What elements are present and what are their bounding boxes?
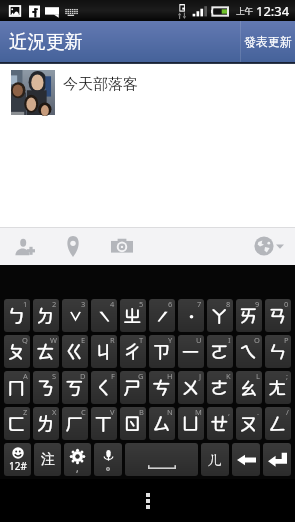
button[interactable]: ㄤ	[265, 371, 291, 404]
button[interactable]: ㄩ	[178, 407, 204, 440]
staticText: ㄧ	[181, 341, 201, 362]
staticText: 2	[52, 299, 57, 309]
staticText: P	[284, 335, 289, 345]
staticText: Y	[168, 335, 173, 345]
staticText: ㄘ	[152, 377, 172, 398]
button[interactable]: ㄚ	[207, 299, 233, 332]
button[interactable]: ㄅ	[4, 299, 30, 332]
button[interactable]: ㄢ	[265, 299, 291, 332]
button[interactable]: Camera	[97, 227, 146, 265]
button[interactable]: ㄏ	[62, 407, 88, 440]
button[interactable]: ㄠ	[236, 371, 262, 404]
staticText: ㄞ	[239, 305, 259, 326]
button[interactable]: ㄓ	[120, 299, 146, 332]
staticText: O	[254, 335, 260, 345]
button[interactable]: ㄥ	[265, 407, 291, 440]
staticText: 4	[110, 299, 115, 309]
button[interactable]: ㄌ	[33, 407, 59, 440]
staticText: Z	[23, 407, 28, 417]
button[interactable]: 發表更新	[241, 21, 295, 62]
staticText: J	[199, 371, 202, 381]
staticText: ㄐ	[94, 341, 114, 362]
button[interactable]: 6	[149, 299, 175, 332]
button[interactable]: ㄟ	[236, 335, 262, 368]
button[interactable]: ㄛ	[207, 335, 233, 368]
button[interactable]: ㄔ	[120, 335, 146, 368]
staticText: ㄈ	[7, 413, 27, 434]
button[interactable]: ㄕ	[120, 371, 146, 404]
staticText: ㄗ	[152, 341, 172, 362]
staticText: ㄎ	[65, 377, 85, 398]
staticText: ㄣ	[268, 341, 288, 362]
button[interactable]: ㄦ	[201, 443, 229, 476]
staticText: S	[52, 371, 57, 381]
staticText: ㄑ	[94, 377, 114, 398]
button[interactable]: ㄖ	[120, 407, 146, 440]
staticText: ㄢ	[268, 305, 288, 326]
button[interactable]: 注	[34, 443, 61, 476]
staticText: 5	[139, 299, 144, 309]
staticText: ㄍ	[65, 341, 85, 362]
button[interactable]: ㄊ	[33, 335, 59, 368]
button[interactable]: ㄗ	[149, 335, 175, 368]
staticText: 7	[197, 299, 202, 309]
staticText: ㄙ	[152, 413, 172, 434]
staticText: ;	[286, 371, 289, 381]
button[interactable]: ㄡ	[236, 407, 262, 440]
staticText: R	[110, 335, 115, 345]
button[interactable]: ㄑ	[91, 371, 117, 404]
button[interactable]: ㄐ	[91, 335, 117, 368]
button[interactable]: ㄉ	[33, 299, 59, 332]
staticText: ㄒ	[94, 413, 114, 434]
button[interactable]: ㄧ	[178, 335, 204, 368]
button[interactable]: Audience selector	[243, 227, 295, 265]
staticText: 0	[284, 299, 289, 309]
staticText: D	[80, 371, 86, 381]
staticText: ㄟ	[239, 341, 259, 362]
staticText: V	[110, 407, 115, 417]
staticText: ,	[76, 461, 79, 475]
staticText: N	[167, 407, 173, 417]
staticText: 6	[168, 299, 173, 309]
button[interactable]: ㄆ	[4, 335, 30, 368]
button[interactable]: ㄇ	[4, 371, 30, 404]
staticText: ㄅ	[7, 305, 27, 326]
staticText: ㄌ	[36, 413, 56, 434]
button[interactable]: Space	[125, 443, 198, 476]
staticText: 1	[23, 299, 28, 309]
staticText: .	[257, 407, 260, 417]
staticText: ㄉ	[36, 305, 56, 326]
button[interactable]: ㄙ	[149, 407, 175, 440]
button[interactable]: ㄘ	[149, 371, 175, 404]
button[interactable]: Backspace	[232, 443, 260, 476]
button[interactable]: ㄒ	[91, 407, 117, 440]
staticText: ㄥ	[268, 413, 288, 434]
button[interactable]: ㄨ	[178, 371, 204, 404]
button[interactable]: ㄋ	[33, 371, 59, 404]
staticText: 3	[81, 299, 86, 309]
staticText: L	[256, 371, 260, 381]
button[interactable]: ㄜ	[207, 371, 233, 404]
button[interactable]: Enter	[263, 443, 291, 476]
staticText: ㄖ	[123, 413, 143, 434]
button[interactable]: ㄈ	[4, 407, 30, 440]
staticText: Q	[22, 335, 28, 345]
button[interactable]: Settings	[64, 443, 91, 476]
button[interactable]: Voice input	[94, 443, 122, 476]
button[interactable]: Tag people	[0, 227, 49, 265]
button[interactable]: ㄝ	[207, 407, 233, 440]
button[interactable]: Check in	[49, 227, 97, 265]
staticText: K	[226, 371, 231, 381]
button[interactable]: ㄞ	[236, 299, 262, 332]
staticText: 今天部落客	[63, 75, 138, 94]
button[interactable]: More options	[126, 479, 170, 522]
button[interactable]: 4	[91, 299, 117, 332]
button[interactable]: 3	[62, 299, 88, 332]
button[interactable]: ㄎ	[62, 371, 88, 404]
button[interactable]: Emoji and numbers	[4, 443, 31, 476]
button[interactable]: 7	[178, 299, 204, 332]
button[interactable]: ㄣ	[265, 335, 291, 368]
button[interactable]: ㄍ	[62, 335, 88, 368]
staticText: ㄡ	[239, 413, 259, 434]
staticText: F	[111, 371, 115, 381]
